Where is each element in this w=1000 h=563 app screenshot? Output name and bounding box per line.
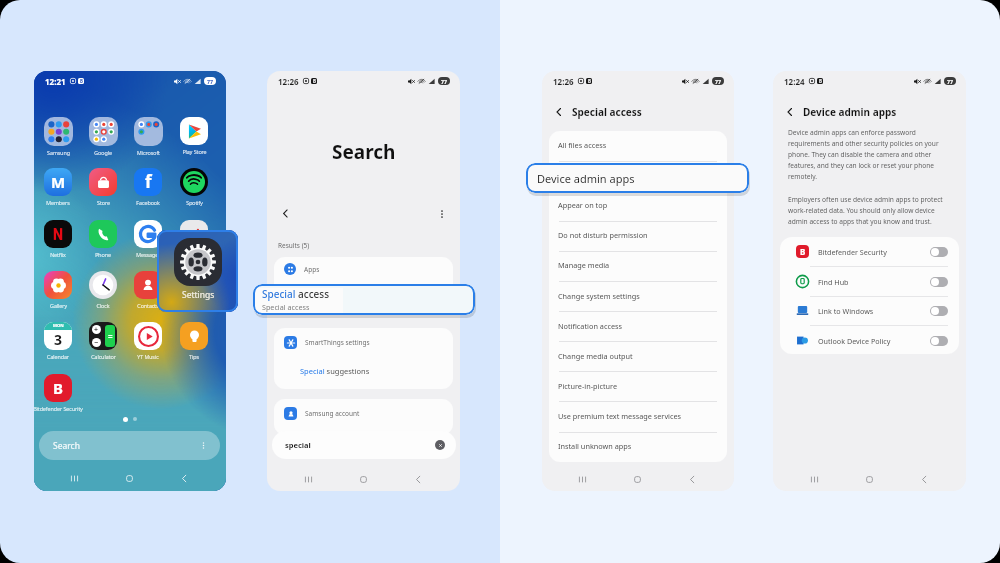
- button[interactable]: Change media output: [549, 341, 727, 371]
- button[interactable]: Gallery: [34, 271, 87, 315]
- button[interactable]: special: [272, 431, 456, 459]
- button[interactable]: MON: [34, 322, 87, 366]
- button[interactable]: Do not disturb permission: [549, 220, 727, 250]
- button[interactable]: Find Hub: [780, 267, 959, 296]
- button[interactable]: Apps: [274, 257, 453, 295]
- staticText: Calendar: [47, 353, 69, 360]
- staticText: Gallery: [50, 302, 67, 309]
- staticText: Device admin apps: [803, 105, 897, 119]
- button[interactable]: Spotify: [165, 168, 223, 212]
- button[interactable]: Toggle Bitdefender Security: [930, 247, 948, 257]
- staticText: Device admin apps: [558, 170, 623, 180]
- button[interactable]: Netflix: [34, 220, 87, 264]
- staticText: Device admin apps can enforce password r…: [788, 128, 956, 181]
- button[interactable]: Appear on top: [549, 190, 727, 220]
- button[interactable]: Special access: [253, 284, 475, 315]
- button[interactable]: Link to Windows: [780, 296, 959, 325]
- staticText: Link to Windows: [818, 306, 874, 316]
- button[interactable]: Recents: [281, 468, 336, 490]
- staticText: Bitdefender Security: [34, 405, 83, 412]
- button[interactable]: Internet: [165, 271, 223, 315]
- button[interactable]: Home: [610, 468, 665, 490]
- button[interactable]: Picture-in-picture: [549, 371, 727, 401]
- staticText: 12:26: [278, 76, 299, 87]
- staticText: Clock: [96, 302, 110, 309]
- button[interactable]: Google: [74, 117, 132, 161]
- staticText: Device admin apps: [537, 171, 635, 186]
- staticText: =: [108, 331, 113, 342]
- staticText: Picture-in-picture: [558, 381, 618, 391]
- staticText: All files access: [558, 140, 607, 150]
- button[interactable]: Toggle Link to Windows: [930, 306, 948, 316]
- button[interactable]: Search: [39, 431, 220, 460]
- button[interactable]: Manage media: [549, 250, 727, 280]
- staticText: Camera: [185, 251, 204, 258]
- button[interactable]: Home: [336, 468, 391, 490]
- button[interactable]: Device admin apps: [526, 163, 749, 193]
- staticText: 77: [441, 78, 447, 85]
- button[interactable]: Play Store: [165, 117, 223, 161]
- other: Recents: [809, 474, 820, 485]
- button[interactable]: f: [119, 168, 177, 212]
- button[interactable]: Toggle Find Hub: [930, 277, 948, 287]
- button[interactable]: B: [34, 374, 87, 418]
- staticText: Contacts: [137, 302, 159, 309]
- other: Back: [919, 474, 930, 485]
- button[interactable]: Microsoft: [119, 117, 177, 161]
- staticText: MON: [53, 323, 64, 329]
- button[interactable]: Device admin apps: [549, 160, 727, 190]
- staticText: Change media output: [558, 351, 633, 361]
- button[interactable]: Back: [157, 467, 212, 489]
- staticText: Employers often use device admin apps to…: [788, 195, 956, 226]
- button[interactable]: Home: [842, 468, 897, 490]
- button[interactable]: Recents: [47, 467, 102, 489]
- button[interactable]: Recents: [787, 468, 842, 490]
- button[interactable]: Use premium text message services: [549, 401, 727, 431]
- staticText: M: [51, 172, 66, 192]
- button[interactable]: M: [34, 168, 87, 212]
- button[interactable]: B: [780, 237, 959, 266]
- button[interactable]: Home: [102, 467, 157, 489]
- staticText: Outlook Device Policy: [818, 336, 891, 346]
- staticText: Change system settings: [558, 291, 640, 301]
- staticText: Samsung: [47, 149, 70, 156]
- button[interactable]: Back: [897, 468, 952, 490]
- staticText: Calculator: [91, 353, 116, 360]
- button[interactable]: Store: [74, 168, 132, 212]
- button[interactable]: Back: [391, 468, 446, 490]
- button[interactable]: All files access: [549, 131, 727, 160]
- button[interactable]: Toggle Outlook Device Policy: [930, 336, 948, 346]
- button[interactable]: Recents: [555, 468, 610, 490]
- button[interactable]: YT Music: [119, 322, 177, 366]
- button[interactable]: Settings: [157, 230, 238, 312]
- button[interactable]: Tips: [165, 322, 223, 366]
- staticText: −: [94, 338, 99, 347]
- button[interactable]: Change system settings: [549, 281, 727, 311]
- button[interactable]: Outlook Device Policy: [780, 326, 959, 354]
- button[interactable]: Contacts: [119, 271, 177, 315]
- button[interactable]: More options: [434, 206, 449, 221]
- button[interactable]: +: [74, 322, 132, 366]
- button[interactable]: Back: [665, 468, 720, 490]
- button[interactable]: Back: [278, 206, 293, 221]
- button[interactable]: Notification access: [549, 311, 727, 341]
- other: Recents: [303, 474, 314, 485]
- button[interactable]: Samsung: [34, 117, 87, 161]
- staticText: Search: [53, 440, 80, 452]
- button[interactable]: Phone: [74, 220, 132, 264]
- button[interactable]: Back: [783, 105, 797, 119]
- staticText: special: [285, 440, 311, 450]
- button[interactable]: Samsung account: [274, 399, 453, 435]
- button[interactable]: Messages: [119, 220, 177, 264]
- staticText: Messages: [136, 251, 161, 258]
- other: Back: [179, 473, 190, 484]
- other: Recents: [69, 473, 80, 484]
- button[interactable]: Back: [552, 105, 566, 119]
- button[interactable]: Camera: [165, 220, 223, 264]
- button[interactable]: Clock: [74, 271, 132, 315]
- button[interactable]: Install unknown apps: [549, 431, 727, 461]
- button[interactable]: SmartThings settings: [274, 328, 453, 389]
- staticText: 12:24: [784, 76, 805, 87]
- staticText: 3: [54, 330, 63, 349]
- staticText: Manage media: [558, 260, 610, 270]
